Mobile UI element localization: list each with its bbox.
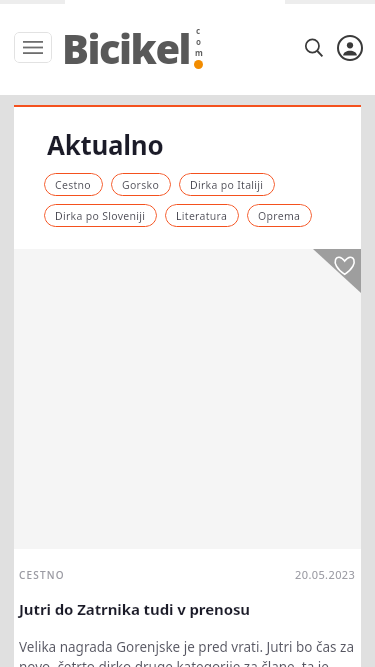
staticText: c xyxy=(196,25,201,36)
button[interactable]: Oprema xyxy=(247,204,312,227)
staticText: Velika nagrada Gorenjske je pred vrati. … xyxy=(19,638,356,667)
button[interactable]: Cestno xyxy=(44,173,103,196)
staticText: Cestno xyxy=(55,178,92,192)
staticText: o xyxy=(196,36,201,47)
button[interactable]: Literatura xyxy=(165,204,239,227)
staticText: Jutri do Zatrnika tudi v prenosu xyxy=(19,599,251,619)
button[interactable]: Add to favourites xyxy=(313,249,361,293)
staticText: Aktualno xyxy=(47,127,164,162)
button[interactable]: Gorsko xyxy=(111,173,171,196)
button[interactable]: Search xyxy=(297,31,331,65)
staticText: Gorsko xyxy=(122,178,160,192)
staticText: Dirka po Italiji xyxy=(190,178,264,192)
button[interactable]: Dirka po Italiji xyxy=(179,173,275,196)
staticText: Dirka po Sloveniji xyxy=(55,209,146,223)
staticText: m xyxy=(195,47,203,58)
button[interactable]: Add to favourites xyxy=(14,249,361,549)
button[interactable]: Bicikel xyxy=(62,21,203,75)
button[interactable]: Dirka po Sloveniji xyxy=(44,204,157,227)
staticText: Oprema xyxy=(258,209,301,223)
button[interactable]: Jutri do Zatrnika tudi v prenosu xyxy=(19,599,356,619)
staticText: Literatura xyxy=(176,209,228,223)
button[interactable]: Open menu xyxy=(14,32,52,63)
staticText: Bicikel xyxy=(62,21,191,75)
staticText: CESTNO xyxy=(19,568,65,582)
button[interactable]: Account xyxy=(333,31,367,65)
staticText: 20.05.2023 xyxy=(295,567,356,582)
